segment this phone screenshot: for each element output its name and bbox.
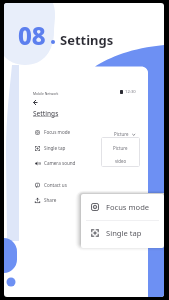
staticText: Focus mode <box>106 202 150 212</box>
button[interactable]: Share <box>19 195 148 205</box>
staticText: Share <box>44 197 57 203</box>
staticText: Single tap <box>106 228 142 238</box>
staticText: Single tap <box>44 145 66 151</box>
staticText: Settings <box>60 31 114 49</box>
button[interactable]: Picture <box>114 131 136 137</box>
staticText: Picture <box>113 145 128 151</box>
button[interactable]: Single tap <box>19 143 148 153</box>
staticText: Picture <box>114 131 129 137</box>
staticText: Settings <box>33 109 59 118</box>
button[interactable]: Picture <box>101 140 140 155</box>
staticText: Camera sound <box>44 160 76 166</box>
button[interactable]: Single tap <box>81 220 164 246</box>
staticText: Focus mode <box>44 129 71 135</box>
button[interactable]: Camera sound <box>19 158 148 168</box>
staticText: 08 <box>18 19 46 52</box>
button[interactable]: Contact us <box>19 180 148 190</box>
staticText: 12:30 <box>125 89 136 95</box>
button[interactable]: Back <box>33 100 38 105</box>
button[interactable]: Focus mode <box>81 194 164 220</box>
staticText: Contact us <box>44 182 67 188</box>
button[interactable]: video <box>101 153 140 167</box>
staticText: video <box>115 158 127 164</box>
staticText: Mobile Network <box>33 91 59 96</box>
button[interactable]: Focus mode <box>19 127 148 137</box>
